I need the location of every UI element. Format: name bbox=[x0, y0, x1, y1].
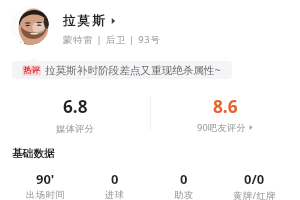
button[interactable]: 0 bbox=[149, 170, 219, 198]
button[interactable]: 0 bbox=[80, 170, 149, 198]
other: 球员头像 bbox=[11, 7, 49, 45]
staticText: 基础数据 bbox=[12, 147, 55, 160]
staticText: 0 bbox=[180, 170, 188, 188]
button[interactable]: 8.6 bbox=[150, 94, 300, 136]
staticText: 90' bbox=[36, 170, 55, 188]
staticText: 蒙特雷 | 后卫 | 93号 bbox=[63, 33, 161, 46]
staticText: 热评 bbox=[23, 65, 40, 76]
button[interactable]: 6.8 bbox=[0, 94, 150, 136]
staticText: 进球 bbox=[105, 189, 125, 200]
staticText: 媒体评分 bbox=[56, 123, 95, 135]
staticText: 8.6 bbox=[213, 95, 238, 118]
staticText: 黄牌/红牌 bbox=[233, 189, 276, 200]
staticText: 出场时间 bbox=[26, 189, 65, 200]
staticText: 6.8 bbox=[63, 95, 88, 118]
staticText: 拉莫斯 bbox=[63, 13, 107, 29]
button[interactable]: 90' bbox=[11, 170, 80, 198]
staticText: 拉莫斯补时阶段差点又重现绝杀属性~ bbox=[45, 63, 221, 77]
staticText: 0 bbox=[111, 170, 119, 188]
button[interactable]: 热评 bbox=[12, 61, 232, 79]
staticText: 90吧友评分 bbox=[197, 121, 247, 134]
button[interactable]: 0/0 bbox=[219, 170, 289, 198]
button[interactable]: 拉莫斯 bbox=[63, 13, 116, 29]
staticText: 助攻 bbox=[174, 189, 194, 200]
staticText: 0/0 bbox=[244, 170, 265, 188]
